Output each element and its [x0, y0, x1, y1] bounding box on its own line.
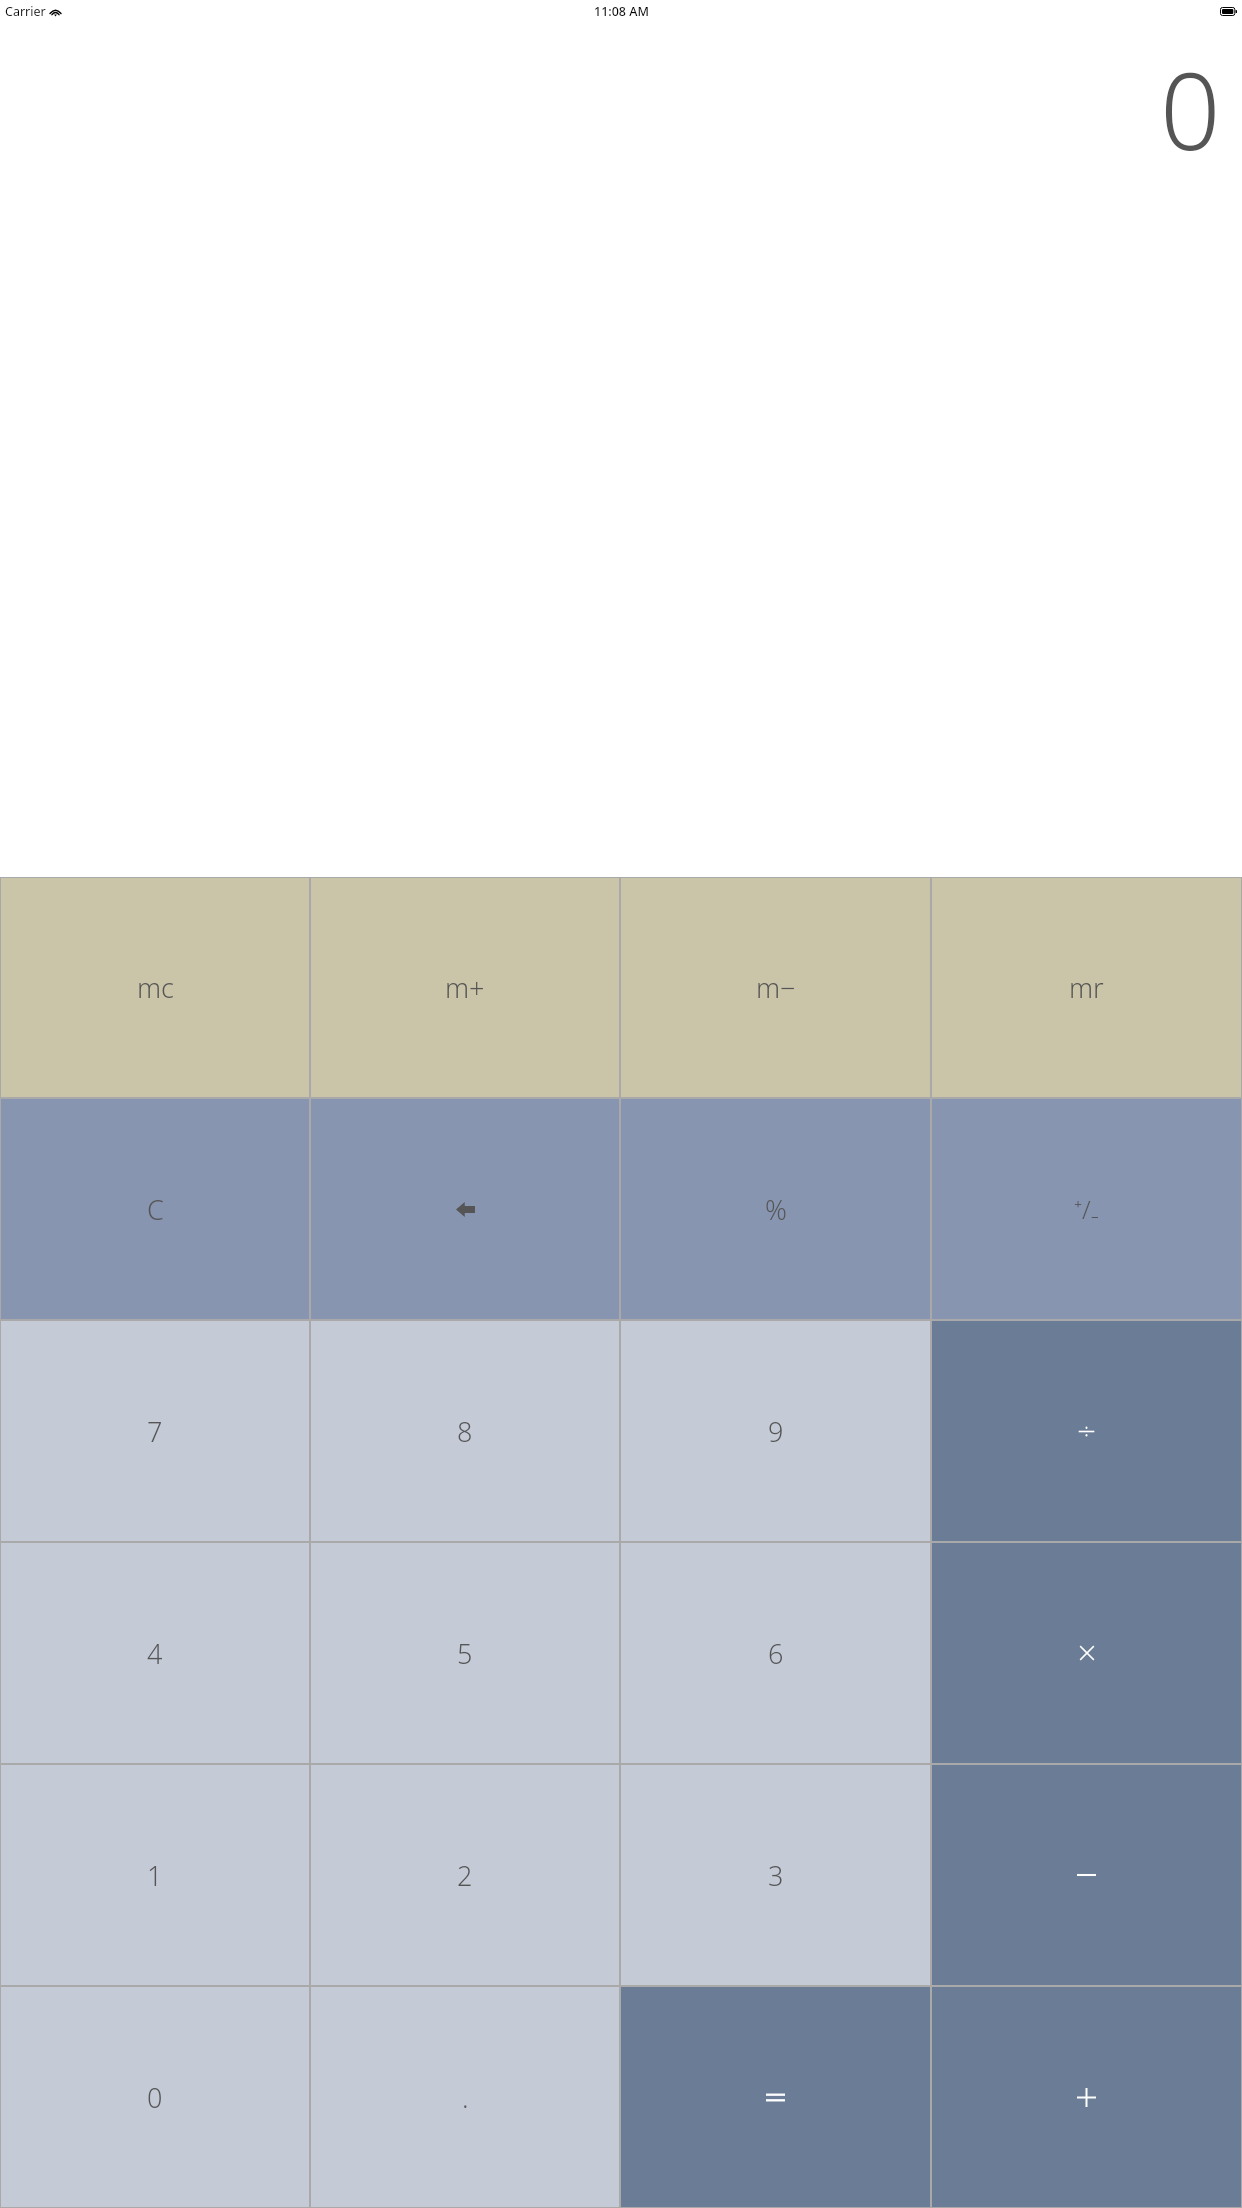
staticText: 5: [457, 1635, 473, 1672]
button[interactable]: Minus: [932, 1765, 1241, 1985]
button[interactable]: mr: [932, 878, 1241, 1097]
staticText: 9: [768, 1413, 784, 1450]
button[interactable]: 8: [311, 1321, 619, 1541]
button[interactable]: mc: [1, 878, 309, 1097]
staticText: 6: [768, 1635, 784, 1672]
staticText: ⁺/₋: [1074, 1192, 1099, 1226]
other: Battery: [1220, 7, 1237, 16]
button[interactable]: Multiply: [932, 1543, 1241, 1763]
staticText: 1: [147, 1857, 163, 1894]
staticText: .: [462, 2079, 469, 2116]
staticText: mc: [137, 969, 174, 1006]
button[interactable]: m−: [621, 878, 930, 1097]
button[interactable]: 2: [311, 1765, 619, 1985]
button[interactable]: Equals: [621, 1987, 930, 2207]
staticText: 0: [147, 2079, 163, 2116]
button[interactable]: Backspace: [311, 1099, 619, 1319]
button[interactable]: 3: [621, 1765, 930, 1985]
button[interactable]: 6: [621, 1543, 930, 1763]
staticText: 3: [768, 1857, 784, 1894]
staticText: 8: [457, 1413, 473, 1450]
button[interactable]: m+: [311, 878, 619, 1097]
staticText: m−: [756, 969, 796, 1006]
staticText: 11:08 AM: [594, 3, 649, 20]
staticText: 0: [1160, 37, 1221, 181]
staticText: mr: [1069, 969, 1104, 1006]
staticText: 2: [457, 1857, 473, 1894]
button[interactable]: Plus: [932, 1987, 1241, 2207]
staticText: 7: [147, 1413, 163, 1450]
other: Wi-Fi: [50, 7, 61, 17]
staticText: 4: [147, 1635, 163, 1672]
staticText: %: [765, 1191, 787, 1228]
button[interactable]: 4: [1, 1543, 309, 1763]
staticText: Carrier: [5, 3, 46, 20]
button[interactable]: 0: [1, 1987, 309, 2207]
staticText: C: [147, 1191, 164, 1228]
button[interactable]: 5: [311, 1543, 619, 1763]
button[interactable]: 9: [621, 1321, 930, 1541]
staticText: m+: [445, 969, 485, 1006]
